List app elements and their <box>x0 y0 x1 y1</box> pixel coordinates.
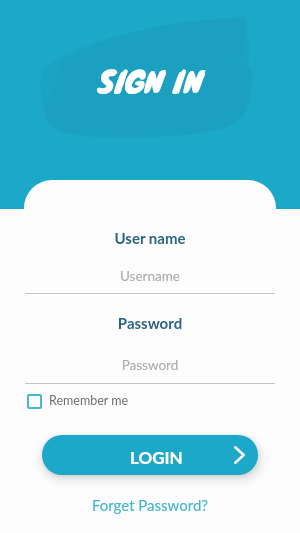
staticText: Password <box>25 357 275 373</box>
button[interactable]: LOGIN <box>42 435 258 475</box>
staticText: LOGIN <box>130 447 183 467</box>
staticText: User name <box>25 229 275 247</box>
button[interactable]: Remember me <box>27 393 129 408</box>
other: Continue <box>234 446 245 464</box>
staticText: SIGN IN <box>98 57 203 104</box>
staticText: Username <box>25 268 275 284</box>
staticText: Password <box>25 314 275 332</box>
button[interactable]: Forget Password? <box>25 496 275 514</box>
staticText: Remember me <box>49 393 129 408</box>
